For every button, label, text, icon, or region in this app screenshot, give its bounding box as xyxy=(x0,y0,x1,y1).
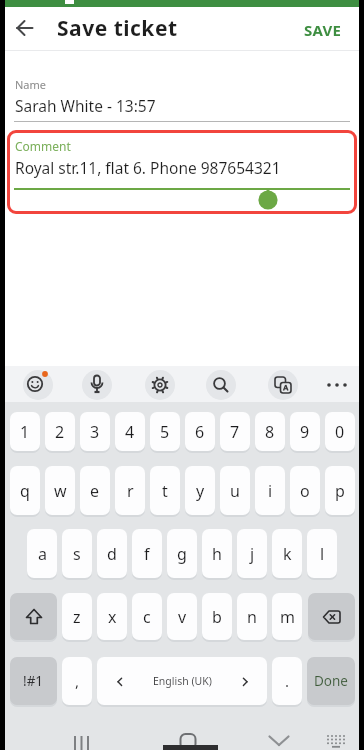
staticText: p xyxy=(335,480,345,502)
staticText: !#1 xyxy=(23,672,44,690)
staticText: 3 xyxy=(90,421,100,443)
staticText: d xyxy=(107,543,117,565)
button[interactable]: k xyxy=(272,529,302,578)
button[interactable]: SAVE xyxy=(304,20,341,40)
button[interactable]: o xyxy=(290,466,320,515)
button[interactable]: a xyxy=(27,529,57,578)
staticText: 9 xyxy=(300,421,310,443)
button[interactable]: 5 xyxy=(150,412,180,451)
staticText: k xyxy=(283,543,292,565)
staticText: m xyxy=(280,606,295,628)
button[interactable]: y xyxy=(185,466,215,515)
button[interactable] xyxy=(145,370,175,400)
button[interactable]: English (UK) xyxy=(97,657,267,705)
staticText: s xyxy=(73,543,81,565)
staticText: b xyxy=(212,606,222,628)
button[interactable] xyxy=(325,378,351,392)
button[interactable]: p xyxy=(325,466,355,515)
staticText: 0 xyxy=(335,421,345,443)
staticText: l xyxy=(320,543,325,565)
staticText: z xyxy=(73,606,81,628)
staticText: Save ticket xyxy=(57,14,178,43)
staticText: y xyxy=(196,480,205,502)
button[interactable]: x xyxy=(97,593,127,640)
button[interactable] xyxy=(7,130,357,214)
button[interactable]: n xyxy=(237,593,267,640)
staticText: n xyxy=(247,606,257,628)
button[interactable]: 2 xyxy=(45,412,75,451)
button[interactable]: g xyxy=(167,529,197,578)
button[interactable]: 6 xyxy=(185,412,215,451)
staticText: r xyxy=(127,480,134,502)
button[interactable]: v xyxy=(167,593,197,640)
staticText: 4 xyxy=(125,421,135,443)
button[interactable]: m xyxy=(272,593,302,640)
button[interactable] xyxy=(268,735,290,747)
staticText: 2 xyxy=(55,421,65,443)
button[interactable]: !#1 xyxy=(10,657,57,705)
button[interactable]: Done xyxy=(307,657,355,705)
staticText: 1 xyxy=(20,421,30,443)
button[interactable]: 7 xyxy=(220,412,250,451)
button[interactable]: t xyxy=(150,466,180,515)
button[interactable]: 4 xyxy=(115,412,145,451)
staticText: v xyxy=(178,606,187,628)
staticText: Comment xyxy=(15,138,71,154)
button[interactable]: j xyxy=(237,529,267,578)
button[interactable] xyxy=(16,19,34,37)
button[interactable] xyxy=(10,593,57,640)
staticText: English (UK) xyxy=(153,674,212,688)
staticText: Done xyxy=(314,672,348,690)
button[interactable]: l xyxy=(307,529,337,578)
staticText: o xyxy=(300,480,310,502)
staticText: , xyxy=(75,671,80,691)
button[interactable]: s xyxy=(62,529,92,578)
staticText: 7 xyxy=(230,421,240,443)
button[interactable]: c xyxy=(132,593,162,640)
button[interactable] xyxy=(23,370,53,400)
staticText: Sarah White - 13:57 xyxy=(15,95,156,116)
staticText: h xyxy=(212,543,222,565)
staticText: w xyxy=(54,480,67,502)
staticText: f xyxy=(144,543,150,565)
button[interactable]: w xyxy=(45,466,75,515)
button[interactable]: h xyxy=(202,529,232,578)
button[interactable]: f xyxy=(132,529,162,578)
button[interactable]: b xyxy=(202,593,232,640)
button[interactable]: i xyxy=(255,466,285,515)
staticText: 6 xyxy=(195,421,205,443)
staticText: 5 xyxy=(160,421,170,443)
button[interactable]: 1 xyxy=(10,412,40,451)
button[interactable] xyxy=(178,733,198,750)
staticText: g xyxy=(177,543,187,565)
staticText: e xyxy=(90,480,100,502)
button[interactable]: q xyxy=(10,466,40,515)
button[interactable] xyxy=(72,736,92,750)
staticText: 8 xyxy=(265,421,275,443)
button[interactable]: 3 xyxy=(80,412,110,451)
button[interactable]: 8 xyxy=(255,412,285,451)
button[interactable] xyxy=(268,370,298,400)
staticText: Name xyxy=(15,77,47,92)
button[interactable]: , xyxy=(62,657,92,705)
button[interactable] xyxy=(82,370,112,400)
staticText: t xyxy=(162,480,168,502)
button[interactable]: e xyxy=(80,466,110,515)
button[interactable]: r xyxy=(115,466,145,515)
button[interactable]: u xyxy=(220,466,250,515)
button[interactable]: d xyxy=(97,529,127,578)
button[interactable]: z xyxy=(62,593,92,640)
staticText: q xyxy=(20,480,30,502)
staticText: c xyxy=(143,606,151,628)
button[interactable]: 9 xyxy=(290,412,320,451)
button[interactable]: 0 xyxy=(325,412,355,451)
staticText: j xyxy=(250,543,255,565)
button[interactable] xyxy=(206,370,236,400)
button[interactable] xyxy=(326,734,346,748)
staticText: a xyxy=(38,543,47,565)
staticText: x xyxy=(108,606,117,628)
button[interactable] xyxy=(308,593,355,640)
staticText: Royal str.11, flat 6. Phone 987654321 xyxy=(15,157,281,178)
staticText: i xyxy=(268,480,273,502)
button[interactable]: . xyxy=(272,657,302,705)
